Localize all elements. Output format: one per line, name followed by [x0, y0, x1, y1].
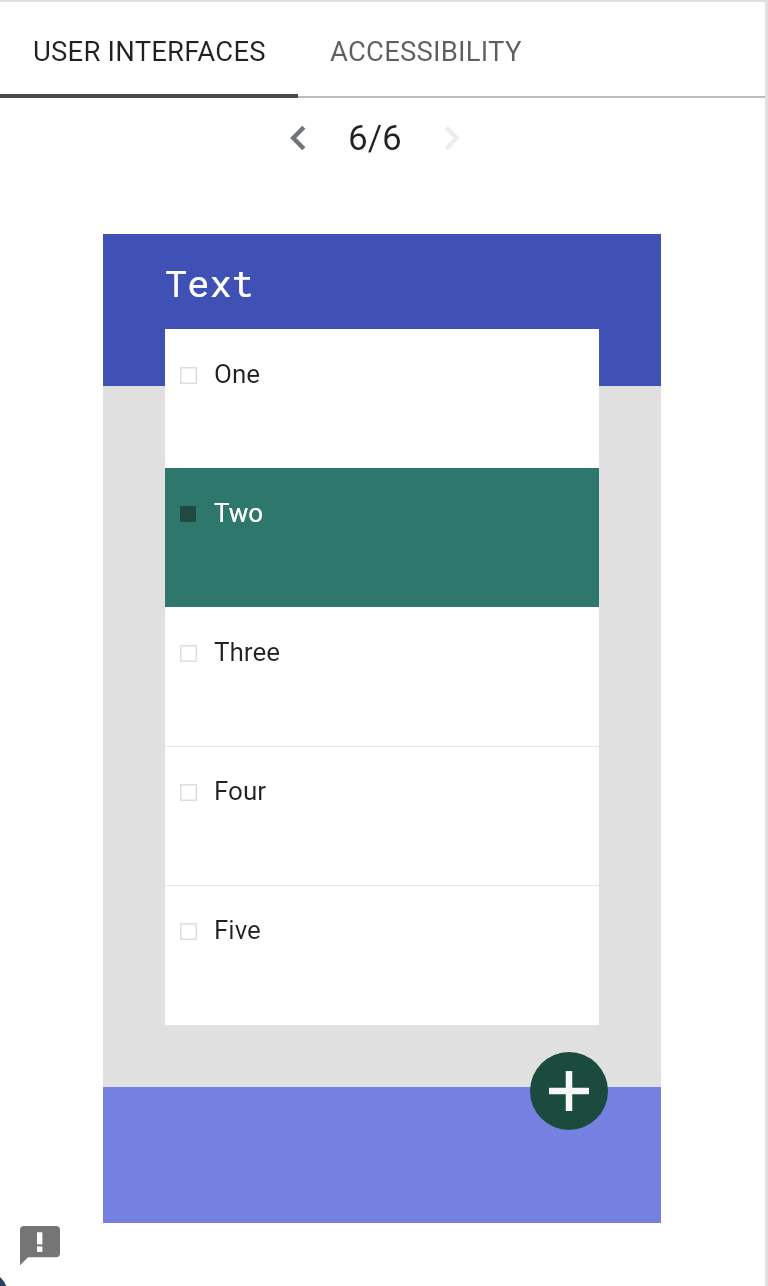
button[interactable]: Four	[165, 746, 599, 885]
staticText: 6/6	[348, 118, 402, 159]
button[interactable]: One	[165, 329, 599, 468]
button[interactable]: Two	[165, 468, 599, 607]
button[interactable]: Three	[165, 607, 599, 746]
button[interactable]: ACCESSIBILITY	[298, 2, 554, 98]
staticText: ACCESSIBILITY	[330, 35, 522, 67]
staticText: Three	[214, 637, 280, 667]
button[interactable]: Add	[530, 1052, 608, 1130]
staticText: One	[214, 359, 261, 389]
button[interactable]: Five	[165, 885, 599, 1024]
button[interactable]: Next page	[427, 114, 475, 162]
staticText: Five	[214, 915, 261, 945]
staticText: Four	[214, 776, 267, 806]
staticText: Two	[214, 498, 264, 528]
staticText: Text	[165, 258, 254, 307]
staticText: USER INTERFACES	[33, 35, 266, 67]
button[interactable]: Previous page	[274, 114, 322, 162]
button[interactable]: Send feedback	[20, 1226, 60, 1266]
button[interactable]: USER INTERFACES	[0, 2, 298, 98]
